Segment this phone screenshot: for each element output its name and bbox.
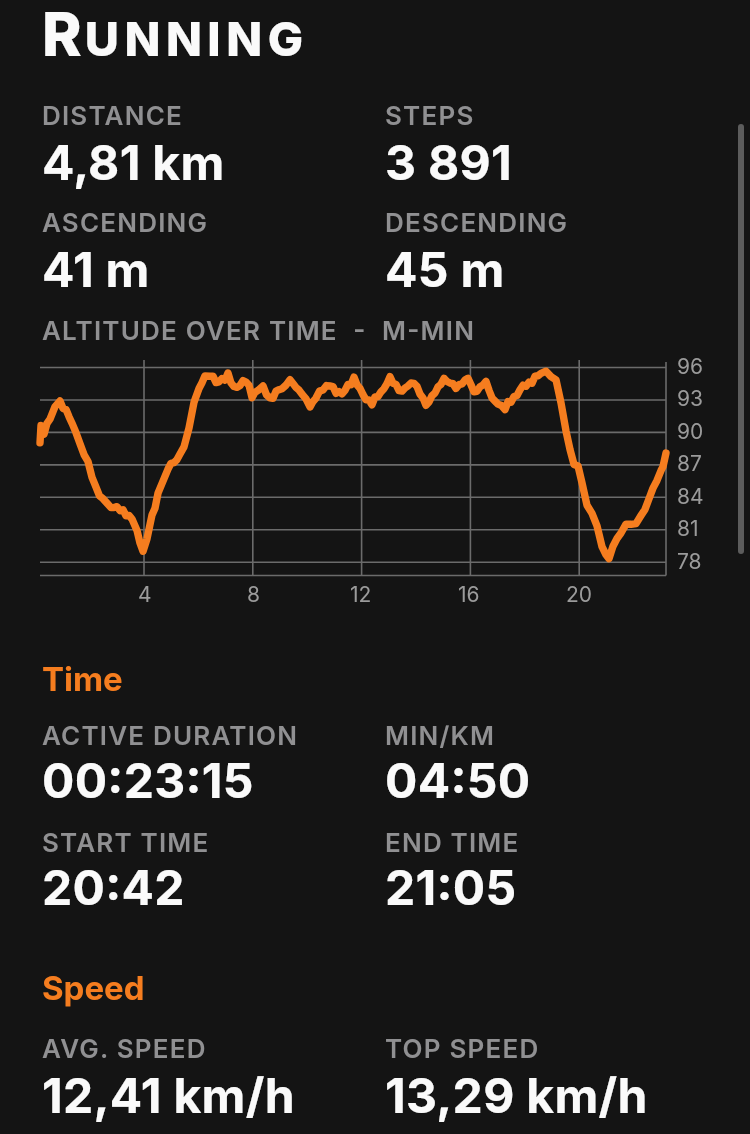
staticText: 4 [138,582,152,607]
staticText: 4,81 km [42,133,225,191]
staticText: 90 [677,419,704,444]
staticText: ACTIVE DURATION [42,720,299,751]
staticText: 13,29 km/h [385,1066,648,1124]
staticText: 78 [677,549,702,574]
staticText: 87 [677,451,702,476]
staticText: 81 [677,516,699,541]
staticText: 3 891 [385,133,512,191]
staticText: STEPS [385,100,475,131]
staticText: 16 [458,582,480,607]
staticText: 96 [677,354,704,379]
staticText: 20 [566,582,593,607]
staticText: TOP SPEED [385,1033,540,1064]
staticText: 45 m [385,240,505,298]
staticText: 21:05 [385,858,517,916]
staticText: 41 m [42,240,150,298]
staticText: 93 [677,386,703,411]
staticText: 20:42 [42,858,185,916]
staticText: DISTANCE [42,100,183,131]
staticText: RUNNING [42,0,309,71]
staticText: DESCENDING [385,207,569,238]
staticText: MIN/KM [385,720,496,751]
staticText: START TIME [42,827,210,858]
staticText: 04:50 [385,751,531,809]
staticText: Time [42,659,123,699]
staticText: AVG. SPEED [42,1033,207,1064]
staticText: Speed [42,968,145,1008]
staticText: END TIME [385,827,520,858]
staticText: 12 [350,582,372,607]
staticText: ALTITUDE OVER TIME - M-MIN [42,315,476,346]
staticText: 00:23:15 [42,751,254,809]
staticText: ASCENDING [42,207,209,238]
staticText: 8 [247,582,260,607]
staticText: 12,41 km/h [42,1066,295,1124]
staticText: 84 [677,484,704,509]
